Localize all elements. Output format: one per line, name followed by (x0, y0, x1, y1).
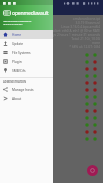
button[interactable]: Add (87, 165, 98, 176)
staticText: 3.0.19 (Erasmus) (75, 21, 100, 25)
button[interactable]: SMB/Cifs (0, 66, 53, 75)
staticText: none (92, 41, 100, 45)
staticText: * 68% uk 12.GT: 0.84 (69, 45, 100, 49)
staticText: NIC socket: eth0 & eth1 @ 00 ve RATE (44, 29, 100, 33)
button[interactable]: About (0, 94, 53, 103)
staticText: SMB/Cifs (12, 69, 26, 73)
button[interactable]: Home (0, 30, 53, 39)
staticText: Simple and beautiful (3, 22, 23, 25)
button[interactable]: Plugin (0, 57, 53, 66)
staticText: About (12, 97, 22, 101)
staticText: 0 days 2 hours 1 minute 31 seconds (46, 33, 100, 37)
staticText: Manage hosts (12, 88, 34, 92)
staticText: Update (12, 42, 24, 46)
staticText: Home (12, 33, 22, 37)
staticText: Linux 3.16.0-4.bpo.amd64 (61, 25, 100, 29)
button[interactable]: Manage hosts (0, 85, 53, 94)
staticText: openmediavault (12, 10, 49, 17)
staticText: Plugin (12, 60, 22, 64)
staticText: http://www.openmediavault.org/ (3, 19, 32, 22)
button[interactable]: File Systems (0, 48, 53, 57)
button[interactable]: Update (0, 39, 53, 48)
staticText: File Systems (12, 51, 31, 55)
staticText: ADMINISTRATION (3, 80, 27, 84)
staticText: Total: 21.1Gi, 10.0G (71, 37, 100, 41)
staticText: omvbeastbone.ipt (72, 17, 100, 21)
